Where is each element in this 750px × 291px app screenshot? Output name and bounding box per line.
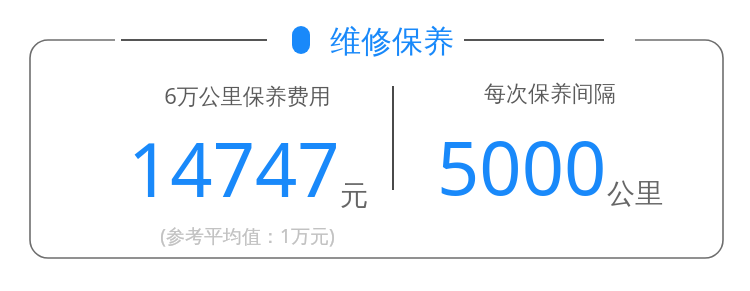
- staticText: 维修保养: [330, 22, 454, 58]
- button[interactable]: 6万公里保养费用: [115, 80, 380, 249]
- staticText: 14747: [128, 118, 340, 219]
- staticText: 公里: [607, 176, 663, 211]
- staticText: 5000: [437, 116, 607, 217]
- staticText: (参考平均值：1万元): [160, 223, 335, 249]
- other: Section marker: [292, 26, 310, 54]
- staticText: 6万公里保养费用: [164, 80, 331, 110]
- button[interactable]: 每次保养间隔: [405, 80, 695, 217]
- button[interactable]: Section marker: [121, 22, 628, 58]
- staticText: 每次保养间隔: [484, 80, 616, 108]
- staticText: 元: [340, 178, 368, 213]
